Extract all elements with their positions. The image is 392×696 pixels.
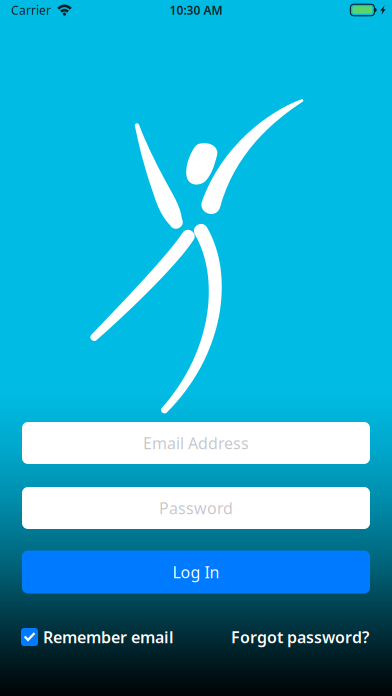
button[interactable]: Log In	[22, 550, 370, 593]
staticText: Forgot password?	[231, 626, 369, 648]
staticText: Email Address	[143, 432, 249, 454]
staticText: Password	[159, 497, 233, 519]
staticText: Log In	[172, 561, 219, 583]
staticText: 10:30 AM	[169, 2, 222, 18]
button[interactable]: Remember email	[21, 626, 174, 648]
staticText: Remember email	[43, 626, 174, 648]
button[interactable]: Forgot password?	[231, 626, 369, 648]
staticText: Carrier	[11, 2, 51, 18]
